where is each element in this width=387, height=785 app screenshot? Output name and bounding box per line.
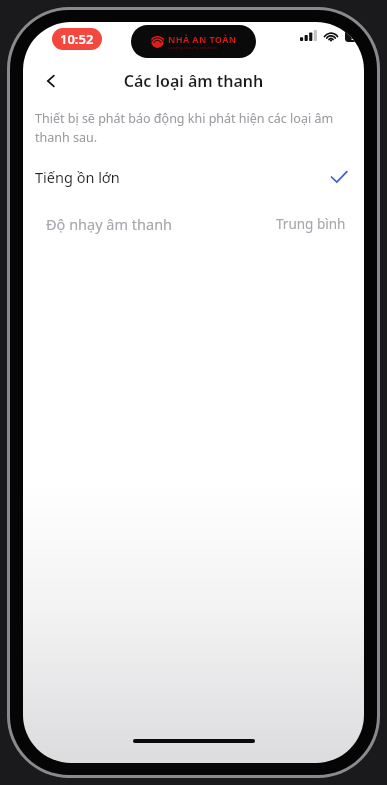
button[interactable]: Độ nhạy âm thanh — [23, 202, 364, 246]
staticText: Leading security solutions — [168, 45, 217, 50]
staticText: Các loại âm thanh — [23, 70, 364, 92]
staticText: Thiết bị sẽ phát báo động khi phát hiện … — [35, 110, 351, 146]
staticText: Độ nhạy âm thanh — [46, 214, 276, 234]
staticText: 10:52 — [60, 30, 94, 48]
button[interactable]: Tiếng ồn lớn — [23, 155, 364, 199]
staticText: Tiếng ồn lớn — [35, 167, 330, 187]
staticText: 95 — [351, 30, 362, 42]
button[interactable]: Back — [29, 64, 73, 98]
staticText: NHÀ AN TOÀN — [168, 33, 237, 45]
staticText: Trung bình — [276, 215, 346, 233]
